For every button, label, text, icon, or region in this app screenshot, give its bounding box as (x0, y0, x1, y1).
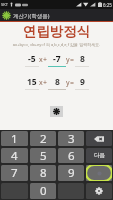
staticText: 8 (55, 76, 60, 88)
button[interactable]: 8 (75, 53, 89, 67)
button[interactable]: 9 (75, 76, 89, 90)
button[interactable]: 2 (30, 131, 56, 146)
staticText: 3 (68, 131, 75, 146)
staticText: + (43, 78, 48, 88)
staticText: = (70, 78, 75, 88)
staticText: = (70, 55, 75, 65)
staticText: + (43, 55, 48, 65)
other: App icon (2, 11, 11, 20)
button[interactable]: -5 (25, 53, 39, 67)
button[interactable]: Settings (86, 183, 112, 199)
staticText: 계산기(학생용) (13, 12, 50, 20)
staticText: 4 (11, 148, 18, 163)
button[interactable]: 1 (1, 131, 28, 146)
button[interactable]: 8 (48, 76, 66, 90)
staticText: 8 (40, 165, 47, 181)
button[interactable] (86, 165, 112, 181)
staticText: 8 (80, 53, 85, 65)
button[interactable]: 15 (25, 76, 39, 90)
staticText: ax+by=c, dx+ey=f 의 a,b,c,d,e,f 값을 입력하세요. (0, 42, 113, 47)
staticText: y (66, 78, 70, 88)
button[interactable]: 4 (1, 148, 28, 163)
button[interactable]: 6 (58, 148, 84, 163)
staticText: 9 (80, 76, 85, 88)
staticText: 9 (68, 165, 75, 181)
button[interactable]: 8 (30, 165, 56, 181)
button[interactable]: 9 (58, 165, 84, 181)
staticText: x (39, 55, 43, 65)
staticText: 15 (27, 76, 37, 88)
other: Settings (86, 183, 112, 199)
button[interactable]: Backspace (86, 131, 112, 146)
button[interactable]: 3 (58, 131, 84, 146)
staticText: 7 (11, 165, 18, 181)
staticText: 5 (40, 148, 47, 163)
button[interactable]: 0 (30, 183, 56, 199)
staticText: 2 (40, 131, 47, 146)
staticText: 6 (68, 148, 75, 163)
staticText: 6:25 (103, 2, 112, 8)
staticText: SKT (1, 2, 8, 7)
staticText: 다음 (94, 152, 105, 159)
staticText: 1 (11, 131, 18, 146)
staticText: -7 (53, 53, 61, 65)
staticText: 0 (40, 183, 47, 199)
other: Backspace (86, 131, 112, 146)
button[interactable]: 5 (30, 148, 56, 163)
staticText: y (66, 55, 70, 65)
staticText: -5 (28, 53, 36, 65)
button[interactable]: Change keyboard (50, 106, 63, 117)
button[interactable]: 다음 (86, 148, 112, 163)
button[interactable]: -7 (48, 53, 66, 67)
button[interactable]: 7 (1, 165, 28, 181)
staticText: 연립방정식 (0, 23, 113, 40)
staticText: x (39, 78, 43, 88)
